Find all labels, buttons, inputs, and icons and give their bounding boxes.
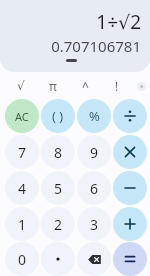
staticText: 8: [54, 143, 63, 162]
staticText: 2: [54, 215, 63, 234]
staticText: ^: [82, 78, 89, 94]
staticText: 3: [90, 215, 99, 234]
button[interactable]: !: [101, 76, 133, 96]
staticText: 7: [18, 143, 27, 162]
button[interactable]: 1: [5, 207, 39, 241]
staticText: 0.707106781: [51, 36, 141, 56]
staticText: 1÷√2: [96, 9, 141, 35]
staticText: 4: [18, 179, 27, 198]
button[interactable]: 3: [77, 207, 111, 241]
button[interactable]: Add: [113, 207, 147, 241]
button[interactable]: Subtract: [113, 171, 147, 205]
staticText: √: [17, 79, 25, 93]
button[interactable]: 0: [5, 242, 39, 276]
button[interactable]: 8: [41, 135, 75, 169]
button[interactable]: Equals: [113, 242, 147, 276]
staticText: !: [115, 78, 119, 94]
button[interactable]: 9: [77, 135, 111, 169]
button[interactable]: √: [5, 76, 37, 96]
button[interactable]: %: [77, 99, 111, 133]
staticText: 5: [54, 179, 63, 198]
staticText: AC: [15, 109, 29, 124]
button[interactable]: 4: [5, 171, 39, 205]
staticText: π: [49, 78, 57, 94]
staticText: 0: [18, 250, 27, 269]
button[interactable]: 7: [5, 135, 39, 169]
button[interactable]: 2: [41, 207, 75, 241]
button[interactable]: π: [37, 76, 69, 96]
button[interactable]: Backspace: [77, 242, 111, 276]
button[interactable]: AC: [5, 99, 39, 133]
staticText: %: [89, 107, 100, 125]
button[interactable]: ( ): [41, 99, 75, 133]
button[interactable]: 5: [41, 171, 75, 205]
staticText: 1: [18, 215, 27, 234]
button[interactable]: More functions: [133, 76, 150, 96]
button[interactable]: Multiply: [113, 135, 147, 169]
button[interactable]: 6: [77, 171, 111, 205]
staticText: ( ): [52, 107, 64, 125]
staticText: 6: [90, 179, 99, 198]
button[interactable]: Decimal point: [41, 242, 75, 276]
staticText: 9: [90, 143, 99, 162]
button[interactable]: Divide: [113, 99, 147, 133]
button[interactable]: ^: [69, 76, 101, 96]
